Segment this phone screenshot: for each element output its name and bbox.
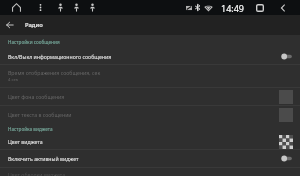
staticText: Цвет фона сообщения xyxy=(8,93,275,100)
staticText: Время отображения сообщения, сек xyxy=(8,69,101,76)
button[interactable]: Back xyxy=(277,2,289,14)
staticText: 4 сек xyxy=(8,77,19,83)
button[interactable]: Время отображения сообщения, сек xyxy=(0,65,300,87)
button[interactable]: Recents xyxy=(254,2,266,14)
button[interactable]: Вкл/Выкл информационного сообщения xyxy=(0,49,300,64)
staticText: Цвет обводки виджета xyxy=(8,171,66,176)
button[interactable]: Shortcut xyxy=(85,0,99,14)
button[interactable]: Цвет виджета xyxy=(0,134,300,149)
staticText: Вкл/Выкл информационного сообщения xyxy=(8,53,275,60)
button[interactable]: Home xyxy=(9,0,23,14)
staticText: Настройка виджета xyxy=(8,126,53,132)
button[interactable]: Цвет обводки виджета xyxy=(0,168,300,176)
staticText: Цвет текста в сообщении xyxy=(8,111,275,118)
button[interactable]: Включить активный виджет xyxy=(0,150,300,167)
staticText: 14:49 xyxy=(221,2,245,14)
staticText: Включить активный виджет xyxy=(8,155,275,162)
button[interactable]: Цвет текста в сообщении xyxy=(0,106,300,123)
button[interactable]: Shortcut xyxy=(53,0,67,14)
button[interactable]: Shortcut xyxy=(69,0,83,14)
button[interactable]: Цвет фона сообщения xyxy=(0,88,300,105)
button[interactable]: Navigate up xyxy=(0,15,20,35)
staticText: Настройки сообщения xyxy=(8,39,60,45)
button[interactable]: More options xyxy=(33,0,47,14)
staticText: Цвет виджета xyxy=(8,138,275,145)
staticText: Радио xyxy=(25,21,43,29)
